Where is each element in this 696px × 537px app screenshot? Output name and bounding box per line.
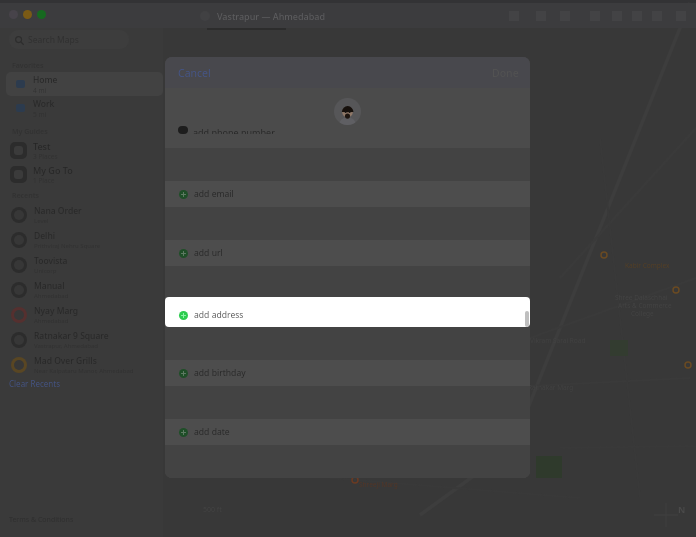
staticText: N — [678, 503, 686, 515]
staticText: Ratnakar 9 Square — [34, 330, 109, 342]
button[interactable]: Clear Recents — [9, 378, 61, 389]
button[interactable]: Ratnakar 9 Square — [0, 327, 163, 352]
button[interactable]: Work — [6, 96, 163, 120]
staticText: Nyay Marg — [34, 305, 79, 317]
button[interactable]: My Go To — [0, 162, 163, 186]
button[interactable]: Window control — [37, 10, 46, 19]
button[interactable]: Contact photo — [334, 98, 361, 125]
button[interactable]: Test — [0, 138, 163, 162]
staticText: Nana Order — [34, 205, 82, 217]
staticText: Mad Over Grills — [34, 355, 97, 367]
button[interactable]: Nyay Marg — [0, 302, 163, 327]
staticText: add email — [194, 188, 234, 200]
button[interactable]: Directions — [534, 9, 547, 22]
button[interactable]: add address — [165, 297, 530, 327]
staticText: Home — [33, 74, 58, 86]
button[interactable]: Look around — [558, 9, 571, 22]
button[interactable]: Home — [6, 72, 163, 96]
staticText: Satellite — [268, 13, 295, 23]
staticText: add phone number — [193, 126, 275, 134]
button[interactable]: Cancel — [165, 62, 219, 84]
staticText: Search Maps — [28, 34, 79, 46]
staticText: add date — [194, 426, 230, 438]
button[interactable]: Sidebar — [674, 9, 687, 22]
staticText: Clear Recents — [9, 378, 61, 389]
staticText: Vastrapur — Ahmedabad — [217, 10, 326, 22]
staticText: 4 mi — [33, 86, 47, 95]
staticText: Transit — [231, 13, 254, 23]
staticText: add url — [194, 247, 223, 259]
staticText: add birthday — [194, 367, 246, 379]
button[interactable]: Share — [507, 9, 520, 22]
button[interactable]: Mad Over Grills — [0, 352, 163, 377]
button[interactable]: Zoom in — [630, 9, 643, 22]
staticText: Ratnakar Marg — [528, 383, 574, 392]
button[interactable]: Window control — [23, 10, 32, 19]
staticText: add address — [194, 309, 244, 321]
staticText: Cancel — [178, 66, 211, 80]
button[interactable]: Window control — [9, 10, 18, 19]
staticText: Test — [33, 140, 51, 152]
button[interactable]: add phone number — [165, 131, 530, 139]
staticText: Work — [33, 98, 55, 110]
button[interactable]: add email — [165, 181, 530, 207]
button[interactable]: Locate me — [650, 9, 663, 22]
staticText: Toovista — [34, 255, 68, 267]
button[interactable]: Nana Order — [0, 202, 163, 227]
staticText: Manual — [34, 280, 65, 292]
button[interactable]: Map mode — [198, 13, 295, 23]
staticText: My Go To — [33, 164, 73, 176]
button[interactable]: Zoom out — [610, 9, 623, 22]
button[interactable]: add url — [165, 240, 530, 266]
button[interactable]: add date — [165, 419, 530, 445]
staticText: Shreeji Marg — [359, 480, 398, 489]
staticText: Delhi — [34, 230, 56, 242]
button[interactable]: Show more — [588, 9, 601, 22]
staticText: Kabir Complex — [625, 261, 670, 270]
button[interactable]: add birthday — [165, 360, 530, 386]
